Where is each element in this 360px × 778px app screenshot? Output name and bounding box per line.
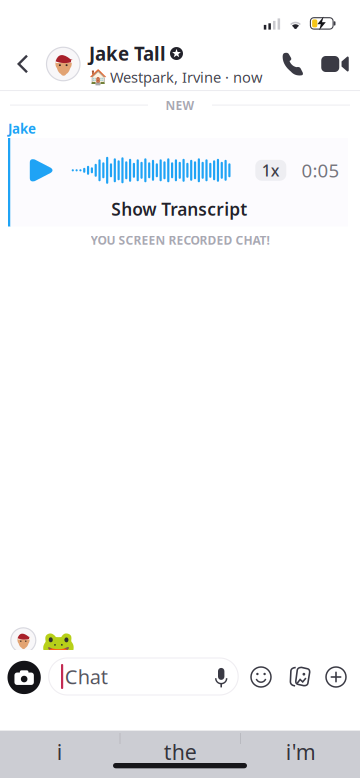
button[interactable]: Play voice message (29, 158, 54, 183)
staticText: 1x (262, 160, 280, 181)
staticText: i'm (286, 737, 316, 766)
button[interactable]: Show Transcript (10, 196, 348, 222)
staticText: YOU SCREEN RECORDED CHAT! (90, 232, 269, 248)
staticText: Jake (8, 120, 36, 137)
staticText: Chat (65, 663, 108, 690)
button[interactable]: 1x (255, 160, 286, 181)
button[interactable]: the (120, 735, 240, 769)
staticText: 🐸 (40, 629, 75, 661)
staticText: NEW (165, 97, 194, 113)
button[interactable]: Emoji (250, 666, 271, 687)
button[interactable]: i'm (241, 735, 360, 769)
button[interactable]: Jake Tall (46, 38, 264, 90)
button[interactable]: Voice call (272, 38, 314, 90)
button[interactable]: Back (8, 38, 38, 90)
button[interactable]: Stickers (287, 666, 309, 687)
staticText: Show Transcript (111, 197, 247, 220)
button[interactable]: i (0, 735, 119, 769)
staticText: 🏠 (89, 69, 107, 86)
button[interactable]: Chat (49, 658, 238, 695)
staticText: Westpark, Irvine · now (110, 67, 263, 87)
button[interactable]: Video call (314, 38, 356, 90)
staticText: the (164, 737, 197, 766)
staticText: i (57, 737, 63, 766)
staticText: 0:05 (301, 158, 339, 183)
button[interactable]: Camera (7, 661, 41, 694)
button[interactable]: Attach (325, 666, 346, 687)
staticText: Jake Tall (89, 41, 166, 66)
